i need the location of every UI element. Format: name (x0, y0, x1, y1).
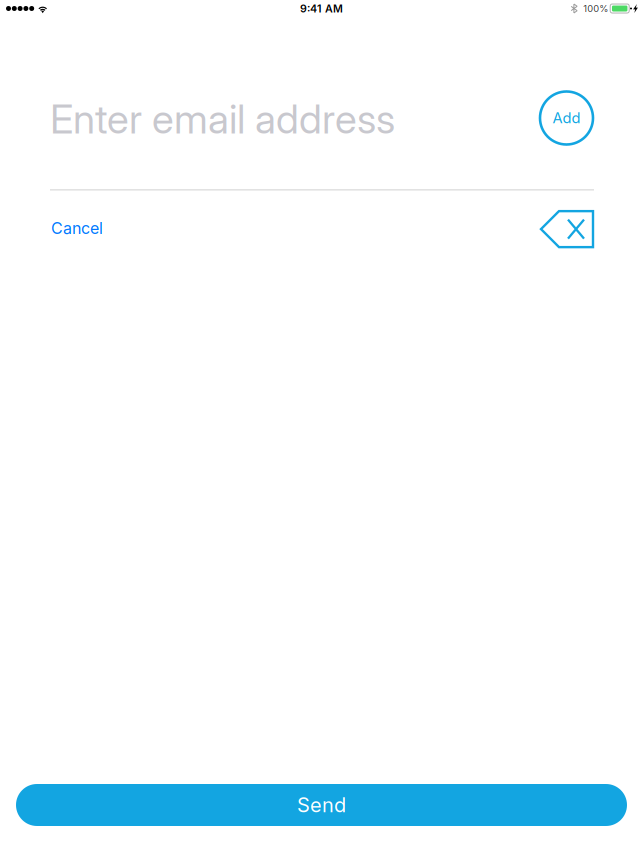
button[interactable]: Cancel (50, 207, 112, 251)
staticText: Enter email address (50, 95, 395, 143)
staticText: 9:41 AM (300, 2, 343, 15)
staticText: Cancel (51, 218, 103, 238)
staticText: Send (297, 793, 346, 817)
button[interactable]: Add (537, 89, 593, 145)
staticText: 100% (583, 3, 608, 14)
button[interactable]: Send (16, 784, 627, 826)
staticText: Add (552, 109, 580, 127)
button[interactable]: Delete (541, 207, 593, 251)
